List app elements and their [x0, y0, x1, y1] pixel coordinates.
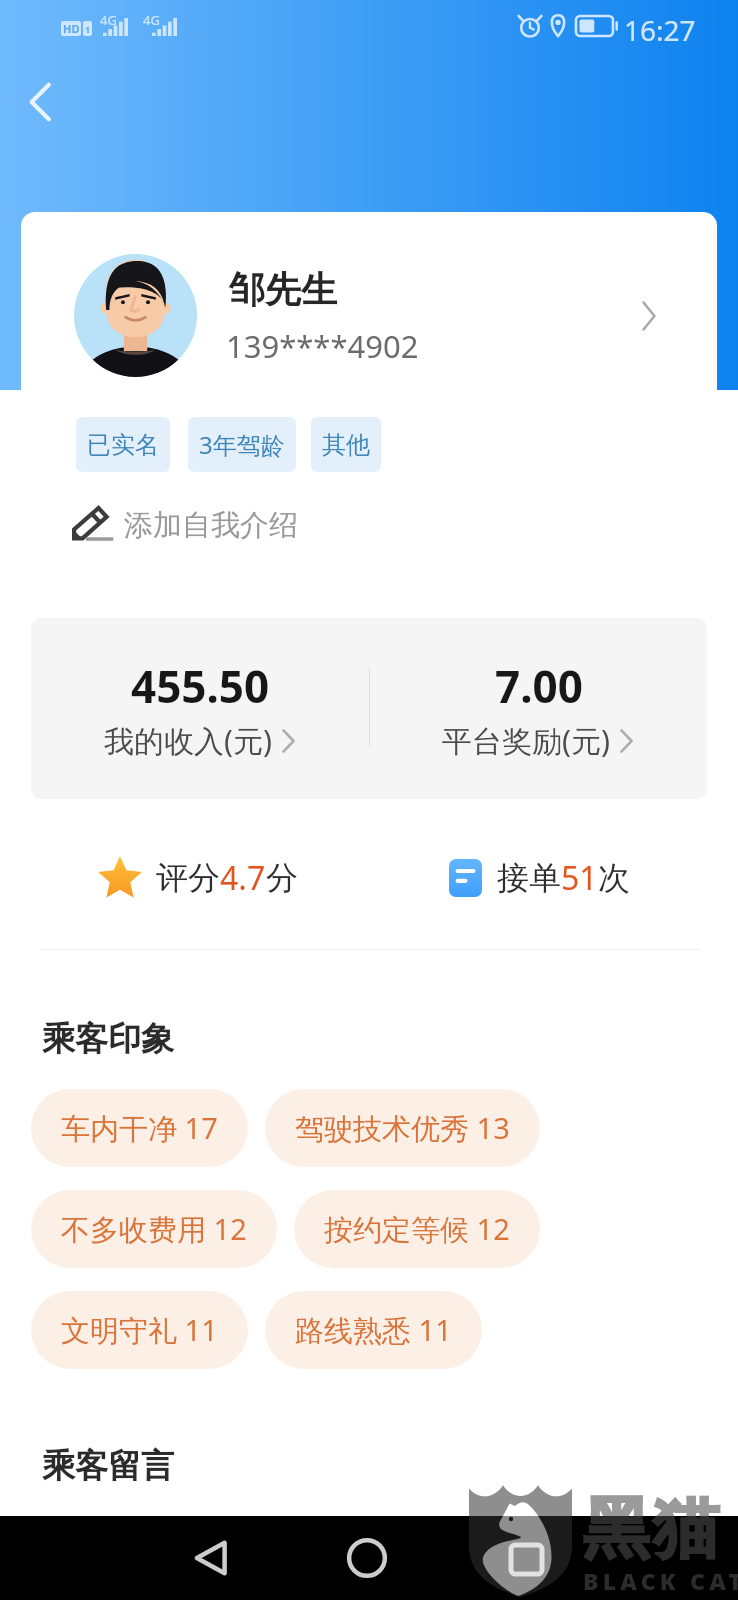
staticText: 其他 — [322, 430, 370, 460]
staticText: 黑猫 — [581, 1516, 721, 1570]
button[interactable]: Home — [329, 1520, 405, 1596]
button[interactable]: Back — [10, 72, 70, 132]
staticText: 评分 — [156, 858, 220, 898]
staticText: 1 — [85, 23, 91, 35]
button[interactable]: 评分 — [96, 850, 298, 906]
button[interactable]: 文明守礼 11 — [31, 1291, 248, 1369]
button[interactable]: Profile detail — [625, 292, 673, 340]
staticText: 乘客印象 — [42, 1018, 174, 1060]
button[interactable]: 路线熟悉 11 — [265, 1291, 482, 1369]
staticText: 车内干净 17 — [61, 1108, 218, 1148]
staticText: 按约定等候 12 — [324, 1209, 510, 1249]
staticText: 路线熟悉 11 — [295, 1310, 452, 1350]
staticText: 不多收费用 12 — [61, 1209, 247, 1249]
staticText: 添加自我介绍 — [124, 507, 298, 544]
staticText: 4.7 — [220, 856, 266, 900]
staticText: BLACK CAT — [583, 1565, 738, 1596]
staticText: 乘客留言 — [42, 1445, 174, 1487]
button[interactable]: 驾驶技术优秀 13 — [265, 1089, 540, 1167]
staticText: 455.50 — [131, 656, 270, 716]
staticText: 7.00 — [495, 656, 583, 716]
button[interactable]: 已实名 — [76, 417, 170, 472]
staticText: 51 — [561, 856, 598, 900]
button[interactable]: 接单 — [447, 850, 630, 906]
staticText: 已实名 — [87, 430, 159, 460]
staticText: 3年驾龄 — [199, 428, 285, 461]
staticText: 次 — [598, 858, 630, 898]
staticText: 驾驶技术优秀 13 — [295, 1108, 510, 1148]
button[interactable]: 3年驾龄 — [188, 417, 296, 472]
button[interactable]: 455.50 — [31, 618, 369, 799]
button[interactable]: Recent apps — [486, 1520, 562, 1596]
button[interactable]: 添加自我介绍 — [72, 506, 298, 544]
button[interactable]: 车内干净 17 — [31, 1089, 248, 1167]
staticText: 4G — [100, 11, 117, 29]
button[interactable]: 7.00 — [370, 618, 707, 799]
staticText: 文明守礼 11 — [61, 1310, 218, 1350]
staticText: 分 — [266, 858, 298, 898]
staticText: 邹先生 — [229, 267, 337, 312]
staticText: 4G — [143, 11, 160, 29]
staticText: 平台奖励(元) — [442, 720, 610, 761]
staticText: 黑猫 — [581, 1487, 721, 1516]
staticText: HD — [63, 21, 80, 36]
button[interactable]: 不多收费用 12 — [31, 1190, 277, 1268]
staticText: 接单 — [497, 858, 561, 898]
button[interactable]: 其他 — [311, 417, 381, 472]
staticText: 16:27 — [624, 11, 696, 49]
button[interactable]: Back — [174, 1520, 250, 1596]
button[interactable]: 按约定等候 12 — [294, 1190, 540, 1268]
staticText: 我的收入(元) — [104, 720, 272, 761]
staticText: 139****4902 — [226, 325, 419, 367]
